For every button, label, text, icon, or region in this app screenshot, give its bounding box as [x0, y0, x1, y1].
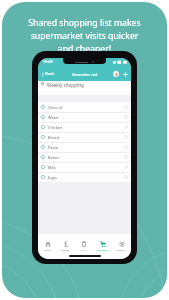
button[interactable]: Members — [113, 71, 119, 77]
staticText: Calendar — [116, 248, 127, 251]
button[interactable]: Milk — [38, 162, 131, 172]
staticText: Shopping — [97, 248, 108, 251]
staticText: 10:49 — [42, 59, 53, 65]
staticText: Bacon — [48, 155, 60, 160]
staticText: Home — [44, 248, 51, 251]
staticText: Chicken — [48, 125, 63, 130]
button[interactable]: To do — [74, 241, 93, 253]
staticText: Budget — [61, 248, 70, 251]
staticText: Groceries List — [72, 72, 98, 77]
staticText: Bread — [48, 135, 59, 140]
staticText: Water — [48, 115, 59, 120]
button[interactable]: Chicken — [38, 122, 131, 132]
button[interactable]: Pasta — [38, 142, 131, 152]
button[interactable]: Water — [38, 112, 131, 122]
staticText: Olive oil — [48, 105, 63, 110]
button[interactable]: Back — [38, 69, 58, 79]
staticText: Milk — [48, 165, 56, 170]
button[interactable]: Budget — [56, 241, 74, 253]
button[interactable]: Olive oil — [38, 102, 131, 112]
button[interactable]: Home — [38, 241, 56, 253]
button[interactable]: Calendar — [112, 241, 131, 253]
staticText: Pasta — [48, 145, 58, 150]
button[interactable]: Add item — [121, 70, 129, 78]
staticText: Eggs — [48, 175, 57, 180]
staticText: To do — [80, 248, 87, 251]
staticText: Weekly shopping — [47, 82, 84, 88]
staticText: Shared shopping list makes supermarket v… — [28, 17, 141, 55]
button[interactable]: Bacon — [38, 152, 131, 162]
button[interactable]: Bread — [38, 132, 131, 142]
button[interactable]: Eggs — [38, 172, 131, 182]
staticText: Back — [45, 71, 55, 77]
button[interactable]: Shopping — [93, 241, 112, 253]
